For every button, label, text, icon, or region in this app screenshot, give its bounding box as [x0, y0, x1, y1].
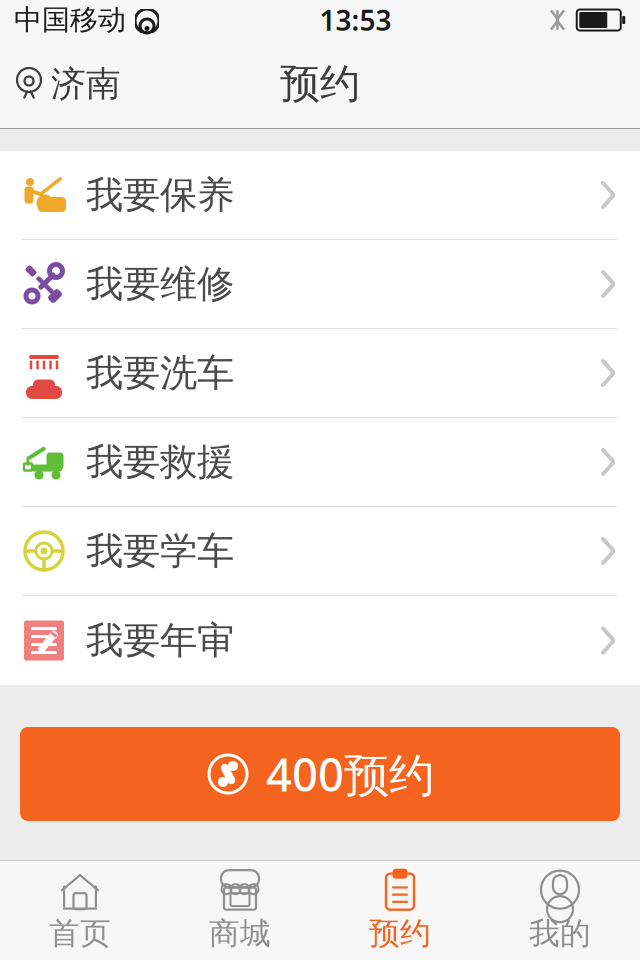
staticText: 我要洗车	[86, 350, 234, 396]
staticText: 商城	[209, 915, 271, 952]
staticText: 中国移动	[14, 3, 126, 37]
staticText: 预约	[369, 915, 431, 952]
button[interactable]: 首页	[0, 862, 160, 958]
button[interactable]: 我要救援	[0, 418, 640, 507]
button[interactable]: 济南	[0, 53, 137, 115]
button[interactable]: 我要洗车	[0, 329, 640, 418]
staticText: 13:53	[319, 1, 391, 39]
button[interactable]: 预约	[320, 862, 480, 958]
button[interactable]: 我的	[480, 862, 640, 958]
staticText: 我要保养	[86, 172, 234, 218]
button[interactable]: 我要保养	[0, 151, 640, 240]
staticText: 我要学车	[86, 528, 234, 574]
staticText: 我要救援	[86, 439, 234, 485]
staticText: 400预约	[266, 744, 434, 804]
button[interactable]: 400预约	[20, 727, 620, 821]
button[interactable]: 商城	[160, 862, 320, 958]
button[interactable]: 我要学车	[0, 507, 640, 596]
staticText: 预约	[280, 59, 360, 108]
staticText: 首页	[49, 915, 111, 952]
button[interactable]: 我要年审	[0, 596, 640, 685]
button[interactable]: 我要维修	[0, 240, 640, 329]
staticText: 我的	[529, 915, 591, 952]
staticText: 济南	[51, 63, 121, 105]
staticText: 我要维修	[86, 261, 234, 307]
staticText: 我要年审	[86, 618, 234, 663]
